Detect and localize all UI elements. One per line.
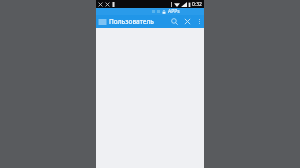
button[interactable]: More options: [194, 15, 204, 28]
button[interactable]: Пользователь: [109, 15, 168, 28]
button[interactable]: Search: [168, 15, 181, 28]
staticText: 0:32: [192, 1, 202, 8]
button[interactable]: Close: [181, 15, 194, 28]
staticText: Пользователь: [109, 17, 154, 26]
staticText: APPs: [168, 8, 180, 15]
button[interactable]: Open navigation menu: [96, 15, 109, 28]
